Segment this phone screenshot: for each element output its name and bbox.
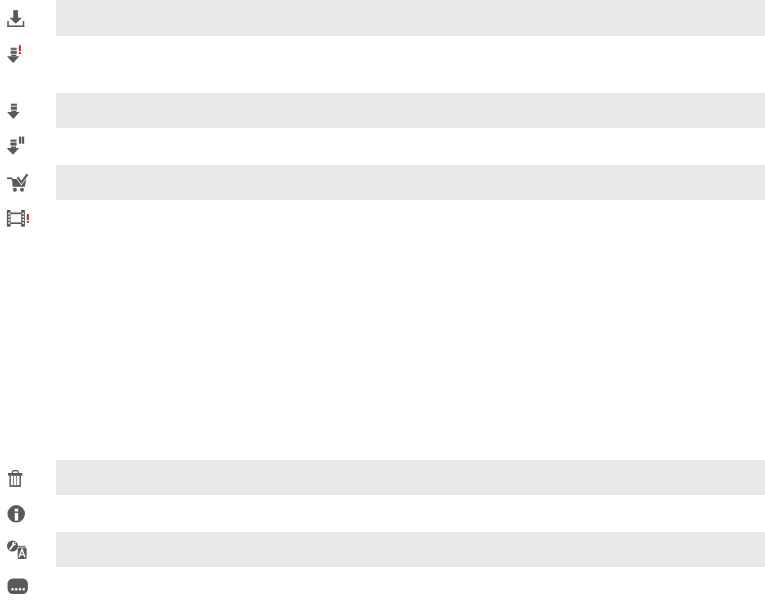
- button[interactable]: Downloading: [0, 93, 765, 128]
- button[interactable]: Download failed: [0, 36, 765, 93]
- button[interactable]: Download paused: [0, 128, 765, 165]
- button[interactable]: Purchase complete: [0, 165, 765, 200]
- button[interactable]: Information: [0, 495, 765, 532]
- button[interactable]: Language settings: [0, 532, 765, 567]
- button[interactable]: Video error: [0, 200, 765, 235]
- button[interactable]: Download complete: [0, 0, 765, 36]
- button[interactable]: Delete: [0, 460, 765, 495]
- button[interactable]: More options: [0, 567, 765, 604]
